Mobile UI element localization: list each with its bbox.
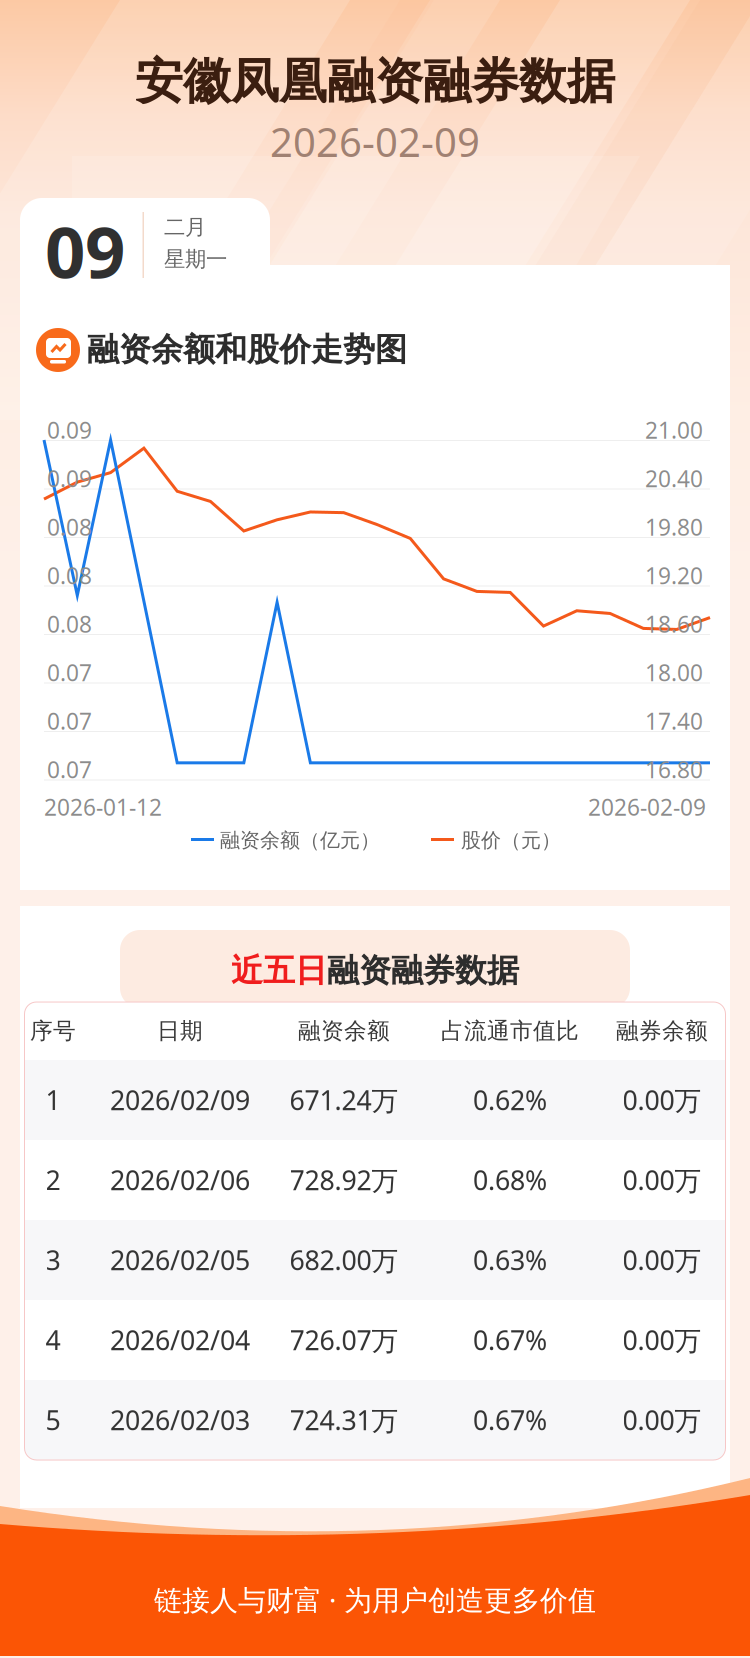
staticText: 18.60 — [645, 609, 703, 639]
staticText: 融资余额（亿元） — [220, 828, 380, 853]
staticText: 5 — [45, 1402, 60, 1438]
staticText: 2026-02-09 — [588, 792, 706, 822]
staticText: 20.40 — [645, 463, 703, 494]
staticText: 0.00万 — [622, 1242, 701, 1278]
staticText: 0.68% — [473, 1162, 547, 1198]
staticText: 占流通市值比 — [441, 1017, 579, 1045]
staticText: 16.80 — [645, 754, 703, 785]
staticText: 724.31万 — [289, 1402, 398, 1438]
staticText: 0.09 — [47, 415, 92, 445]
staticText: 09 — [45, 204, 125, 298]
staticText: 19.20 — [645, 560, 703, 591]
staticText: 2026/02/03 — [110, 1402, 250, 1438]
staticText: 18.00 — [645, 657, 703, 688]
staticText: 0.00万 — [622, 1322, 701, 1358]
staticText: 0.08 — [47, 609, 92, 639]
staticText: 0.67% — [473, 1322, 547, 1358]
staticText: 671.24万 — [289, 1082, 398, 1118]
staticText: 2026/02/04 — [110, 1322, 250, 1358]
staticText: 日期 — [157, 1017, 203, 1045]
staticText: 序号 — [30, 1017, 76, 1045]
staticText: 0.07 — [47, 706, 92, 736]
staticText: 2026/02/05 — [110, 1242, 250, 1278]
staticText: 21.00 — [645, 415, 703, 445]
staticText: 2026-02-09 — [270, 115, 480, 168]
staticText: 0.63% — [473, 1242, 547, 1278]
staticText: 0.67% — [473, 1402, 547, 1438]
staticText: 3 — [45, 1242, 60, 1278]
staticText: 链接人与财富 · 为用户创造更多价值 — [154, 1581, 596, 1618]
staticText: 融券余额 — [616, 1017, 708, 1045]
staticText: 4 — [45, 1322, 60, 1358]
staticText: 0.07 — [47, 657, 92, 688]
staticText: 0.08 — [47, 560, 92, 591]
staticText: 股价（元） — [461, 828, 561, 853]
staticText: 0.00万 — [622, 1082, 701, 1118]
staticText: 0.00万 — [622, 1162, 701, 1198]
staticText: 1 — [45, 1082, 60, 1118]
staticText: 2026/02/06 — [110, 1162, 250, 1198]
staticText: 0.62% — [473, 1082, 547, 1118]
staticText: 2 — [45, 1162, 60, 1198]
staticText: 近五日 — [231, 951, 327, 990]
staticText: 726.07万 — [289, 1322, 398, 1358]
staticText: 19.80 — [645, 512, 703, 542]
staticText: 0.00万 — [622, 1402, 701, 1438]
staticText: 二月 — [164, 214, 206, 240]
staticText: 星期一 — [164, 246, 227, 272]
staticText: 安徽凤凰融资融券数据 — [135, 52, 615, 111]
staticText: 融资融券数据 — [327, 951, 519, 990]
staticText: 0.08 — [47, 512, 92, 542]
staticText: 融资余额和股价走势图 — [87, 330, 407, 369]
staticText: 682.00万 — [289, 1242, 398, 1278]
staticText: 融资余额 — [298, 1017, 390, 1045]
staticText: 728.92万 — [289, 1162, 398, 1198]
staticText: 2026/02/09 — [110, 1082, 250, 1118]
staticText: 0.09 — [47, 463, 92, 494]
staticText: 2026-01-12 — [44, 792, 162, 822]
staticText: 0.07 — [47, 754, 92, 785]
staticText: 17.40 — [645, 706, 703, 736]
